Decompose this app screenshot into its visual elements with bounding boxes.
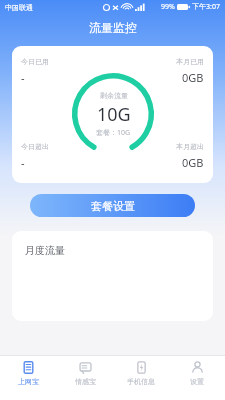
button[interactable]: 套餐设置 — [30, 194, 195, 217]
staticText: - — [21, 70, 25, 85]
staticText: 设置 — [190, 377, 204, 386]
staticText: 情感宝 — [75, 377, 96, 386]
staticText: 上网宝 — [18, 377, 39, 386]
staticText: - — [21, 155, 25, 170]
staticText: 套餐：10G — [96, 128, 131, 138]
staticText: 10G — [97, 102, 131, 127]
staticText: 下午3:07 — [192, 2, 220, 12]
staticText: 月度流量 — [25, 244, 65, 257]
staticText: 今日超出 — [21, 142, 49, 151]
button[interactable]: 上网宝 — [0, 356, 57, 400]
staticText: 流量监控 — [89, 20, 137, 35]
staticText: 99% — [161, 2, 175, 12]
staticText: 手机信息 — [127, 377, 155, 386]
button[interactable]: 设置 — [169, 356, 225, 400]
staticText: 0GB — [182, 155, 204, 170]
staticText: 套餐设置 — [91, 199, 135, 213]
staticText: 本月已用 — [176, 57, 204, 66]
staticText: 0GB — [182, 70, 204, 85]
button[interactable]: 手机信息 — [113, 356, 169, 400]
staticText: 剩余流量 — [100, 91, 128, 100]
staticText: 今日已用 — [21, 57, 49, 66]
staticText: 中国联通 — [5, 3, 33, 12]
button[interactable]: 情感宝 — [57, 356, 113, 400]
staticText: 本月超出 — [176, 142, 204, 151]
